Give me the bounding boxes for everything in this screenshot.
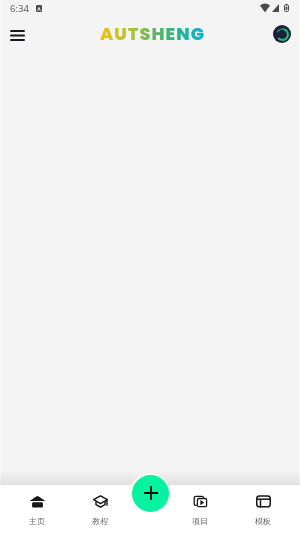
staticText: 项目	[192, 516, 208, 526]
button[interactable]: 教程	[70, 485, 130, 533]
button[interactable]: 模板	[233, 485, 293, 533]
button[interactable]: 项目	[170, 485, 230, 533]
staticText: 主页	[29, 516, 45, 526]
button[interactable]: Create	[132, 475, 169, 512]
button[interactable]: 主页	[7, 485, 67, 533]
button[interactable]: Menu	[5, 23, 29, 47]
staticText: AUTSHENG	[100, 22, 206, 47]
staticText: 教程	[92, 516, 108, 526]
staticText: 6:34	[10, 2, 29, 15]
button[interactable]: Profile	[273, 25, 291, 43]
staticText: 模板	[255, 516, 271, 526]
